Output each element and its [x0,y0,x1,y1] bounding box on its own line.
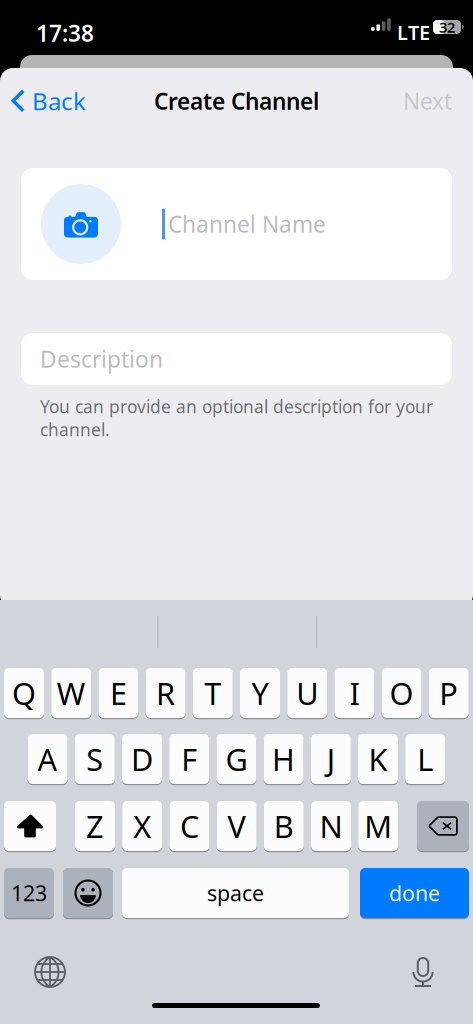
button[interactable]: M [358,801,398,853]
button[interactable]: I [334,668,374,720]
staticText: W [57,673,86,713]
button[interactable]: K [358,734,398,786]
button[interactable]: Dictation [401,950,445,994]
button[interactable]: Delete [417,801,469,853]
staticText: 123 [11,879,47,907]
staticText: L [417,739,433,779]
staticText: I [349,673,359,713]
button[interactable]: Back [0,76,94,126]
staticText: Y [251,673,268,713]
staticText: A [38,739,58,779]
staticText: V [228,806,246,846]
button[interactable]: Channel Name [121,168,452,280]
staticText: Back [32,85,86,117]
button[interactable]: G [216,734,256,786]
button[interactable]: H [264,734,304,786]
staticText: N [319,806,342,846]
staticText: P [439,673,458,713]
staticText: J [327,739,335,779]
button[interactable]: Y [240,668,280,720]
staticText: G [225,739,247,779]
staticText: Next [403,86,452,116]
staticText: X [133,806,151,846]
button[interactable]: L [405,734,445,786]
button[interactable]: W [51,668,91,720]
button[interactable]: E [98,668,138,720]
button[interactable]: J [311,734,351,786]
button[interactable]: T [193,668,233,720]
staticText: H [272,739,295,779]
staticText: B [274,806,294,846]
button[interactable]: D [122,734,162,786]
button[interactable]: F [169,734,209,786]
button[interactable]: Next [389,76,473,126]
button[interactable]: Emoji [63,868,113,920]
button[interactable]: Change keyboard [28,950,72,994]
button[interactable]: space [122,868,349,920]
staticText: D [131,739,153,779]
staticText: You can provide an optional description … [40,395,433,441]
staticText: Q [12,673,36,713]
button[interactable]: X [122,801,162,853]
staticText: done [389,879,440,907]
button[interactable]: V [217,801,257,853]
button[interactable]: Add channel photo [41,184,121,264]
button[interactable]: done [360,868,469,920]
staticText: space [207,879,264,907]
button[interactable]: C [169,801,209,853]
button[interactable]: A [28,734,68,786]
staticText: LTE [397,19,430,46]
staticText: T [204,673,221,713]
staticText: C [180,806,199,846]
staticText: O [390,673,414,713]
button[interactable]: 123 [4,868,54,920]
staticText: E [110,673,127,713]
button[interactable]: S [75,734,115,786]
button[interactable]: Description [21,333,452,385]
button[interactable]: B [264,801,304,853]
staticText: U [296,673,318,713]
staticText: Channel Name [168,209,326,239]
button[interactable]: Z [75,801,115,853]
staticText: R [156,673,175,713]
staticText: M [364,806,392,846]
button[interactable]: N [311,801,351,853]
staticText: S [86,739,103,779]
staticText: 32 [439,17,455,37]
staticText: Create Channel [154,86,319,116]
button[interactable]: R [146,668,186,720]
staticText: K [368,739,387,779]
button[interactable]: P [429,668,469,720]
button[interactable]: Shift [4,801,56,853]
button[interactable]: O [382,668,422,720]
staticText: 17:38 [36,18,94,48]
staticText: Z [86,806,104,846]
staticText: Description [40,344,163,374]
button[interactable]: U [287,668,327,720]
button[interactable]: Q [4,668,44,720]
staticText: F [181,739,197,779]
